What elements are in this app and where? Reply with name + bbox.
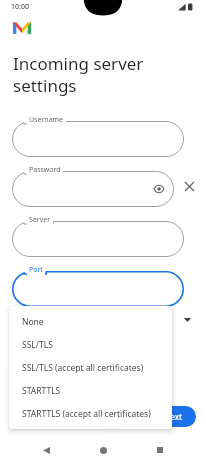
- staticText: STARTTLS (accept all certificates): [22, 408, 151, 420]
- button[interactable]: [12, 121, 184, 157]
- button[interactable]: [12, 221, 184, 257]
- button[interactable]: Back: [35, 439, 57, 461]
- staticText: 10:00: [11, 2, 29, 12]
- staticText: Password: [29, 165, 61, 175]
- staticText: SSL/TLS: [22, 339, 53, 351]
- button[interactable]: Open security type menu: [181, 314, 193, 326]
- button[interactable]: Home: [92, 439, 114, 461]
- button[interactable]: SSL/TLS (accept all certificates): [9, 356, 172, 379]
- button[interactable]: [12, 271, 184, 307]
- staticText: Next: [164, 411, 183, 422]
- button[interactable]: STARTTLS (accept all certificates): [9, 402, 172, 425]
- button[interactable]: Show password: [152, 182, 166, 196]
- button[interactable]: SSL/TLS: [9, 333, 172, 356]
- staticText: None: [22, 316, 44, 328]
- staticText: Incoming server settings: [13, 52, 144, 97]
- button[interactable]: Next: [150, 406, 196, 427]
- staticText: Security type: [13, 315, 56, 325]
- staticText: Server: [29, 215, 51, 225]
- button[interactable]: None: [9, 310, 172, 333]
- staticText: STARTTLS: [22, 385, 61, 397]
- button[interactable]: STARTTLS: [9, 379, 172, 402]
- button[interactable]: Clear password: [180, 177, 198, 195]
- staticText: Port: [29, 265, 43, 275]
- button[interactable]: Recent apps: [149, 439, 171, 461]
- staticText: SSL/TLS (accept all certificates): [22, 362, 144, 374]
- staticText: Username: [29, 115, 64, 125]
- button[interactable]: Show password: [12, 171, 174, 207]
